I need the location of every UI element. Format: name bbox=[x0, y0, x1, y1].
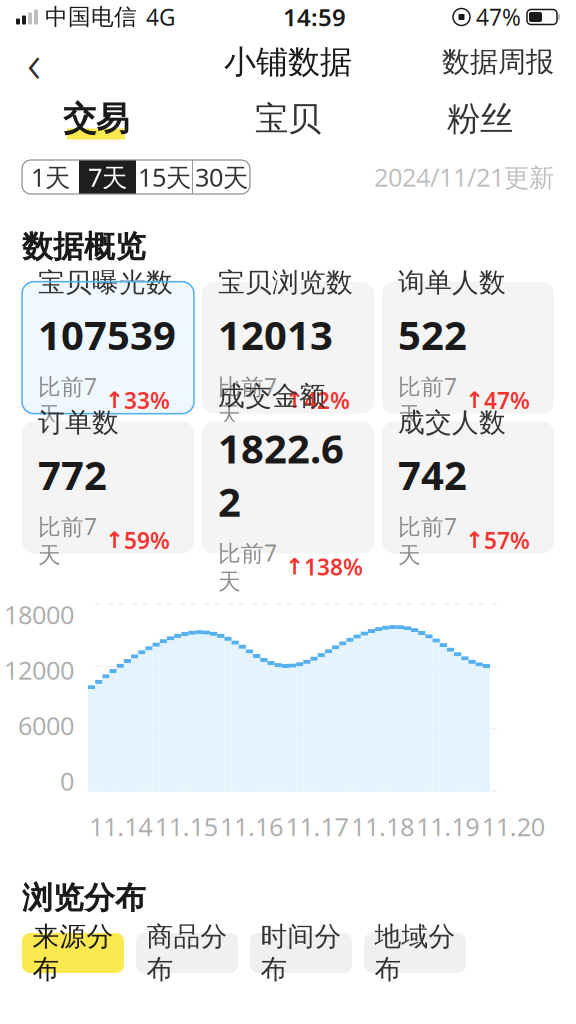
staticText: 比前7天 bbox=[218, 371, 277, 429]
staticText: 小铺数据 bbox=[224, 42, 352, 82]
staticText: 数据周报 bbox=[442, 45, 554, 79]
staticText: 11.19 bbox=[416, 810, 479, 843]
staticText: ↑ bbox=[97, 527, 124, 553]
staticText: 772 bbox=[38, 448, 107, 501]
button[interactable]: 30天 bbox=[193, 160, 250, 194]
staticText: 11.17 bbox=[285, 810, 348, 843]
staticText: 138% bbox=[304, 552, 363, 582]
button[interactable]: 成交金额 bbox=[202, 422, 374, 554]
staticText: 宝贝浏览数 bbox=[218, 266, 353, 299]
staticText: ↑ bbox=[277, 387, 304, 413]
staticText: 成交人数 bbox=[398, 406, 506, 439]
staticText: 地域分布 bbox=[374, 920, 455, 986]
button[interactable]: 交易 bbox=[0, 90, 192, 148]
staticText: 宝贝曝光数 bbox=[38, 266, 173, 299]
staticText: 11.20 bbox=[482, 810, 545, 843]
staticText: 交易 bbox=[63, 98, 129, 139]
staticText: 比前7天 bbox=[38, 371, 97, 429]
staticText: 成交金额 bbox=[218, 380, 326, 412]
staticText: 30天 bbox=[195, 160, 248, 194]
button[interactable]: 返回 bbox=[8, 36, 60, 88]
staticText: 12013 bbox=[218, 308, 333, 361]
button[interactable]: 数据周报 bbox=[428, 36, 568, 88]
staticText: 1822.62 bbox=[218, 421, 344, 528]
staticText: 0 bbox=[60, 764, 74, 798]
staticText: 33% bbox=[124, 385, 170, 415]
staticText: 14:59 bbox=[283, 1, 346, 33]
staticText: 1天 bbox=[31, 160, 70, 194]
staticText: ↑ bbox=[97, 387, 124, 413]
button[interactable]: 15天 bbox=[136, 160, 193, 194]
staticText: 比前7天 bbox=[218, 538, 277, 596]
button[interactable]: 宝贝浏览数 bbox=[202, 282, 374, 414]
staticText: 商品分布 bbox=[146, 920, 227, 986]
staticText: ↑ bbox=[277, 554, 304, 579]
staticText: 522 bbox=[398, 308, 467, 361]
staticText: 11.16 bbox=[220, 810, 283, 843]
staticText: 粉丝 bbox=[447, 98, 513, 139]
button[interactable]: 1天 bbox=[22, 160, 79, 194]
staticText: 42% bbox=[304, 385, 350, 415]
staticText: 2024/11/21更新 bbox=[374, 160, 554, 194]
staticText: 11.14 bbox=[89, 810, 152, 843]
staticText: 来源分布 bbox=[32, 920, 113, 986]
button[interactable]: 商品分布 bbox=[136, 933, 238, 973]
button[interactable]: 宝贝 bbox=[192, 90, 384, 148]
staticText: ↑ bbox=[457, 527, 484, 553]
staticText: ↑ bbox=[457, 387, 484, 413]
staticText: 59% bbox=[124, 525, 170, 555]
staticText: ‹ bbox=[27, 27, 41, 97]
staticText: 11.15 bbox=[155, 810, 218, 843]
staticText: 6000 bbox=[18, 709, 74, 742]
button[interactable]: 时间分布 bbox=[250, 933, 352, 973]
button[interactable]: 地域分布 bbox=[364, 933, 466, 973]
staticText: 浏览分布 bbox=[22, 879, 146, 917]
staticText: 7天 bbox=[88, 160, 127, 194]
staticText: 11.18 bbox=[351, 810, 414, 843]
staticText: 时间分布 bbox=[260, 920, 341, 986]
staticText: 宝贝 bbox=[255, 98, 321, 139]
button[interactable]: 来源分布 bbox=[22, 933, 124, 973]
staticText: 18000 bbox=[4, 598, 74, 631]
staticText: 中国电信 bbox=[45, 3, 137, 31]
staticText: 47% bbox=[476, 2, 521, 32]
staticText: 15天 bbox=[138, 160, 191, 194]
staticText: 107539 bbox=[38, 308, 176, 361]
button[interactable]: 成交人数 bbox=[382, 422, 554, 554]
button[interactable]: 7天 bbox=[79, 160, 136, 194]
staticText: 订单数 bbox=[38, 406, 119, 439]
staticText: 4G bbox=[146, 2, 176, 32]
button[interactable]: 订单数 bbox=[22, 422, 194, 554]
staticText: 比前7天 bbox=[38, 511, 97, 569]
staticText: 比前7天 bbox=[398, 371, 457, 429]
staticText: 57% bbox=[484, 525, 530, 555]
staticText: 比前7天 bbox=[398, 511, 457, 569]
staticText: 47% bbox=[484, 385, 530, 415]
staticText: 742 bbox=[398, 448, 467, 501]
staticText: 询单人数 bbox=[398, 266, 506, 299]
button[interactable]: 宝贝曝光数 bbox=[22, 282, 194, 414]
staticText: 数据概览 bbox=[22, 228, 146, 266]
button[interactable]: 粉丝 bbox=[384, 90, 576, 148]
staticText: 12000 bbox=[4, 653, 74, 687]
button[interactable]: 询单人数 bbox=[382, 282, 554, 414]
